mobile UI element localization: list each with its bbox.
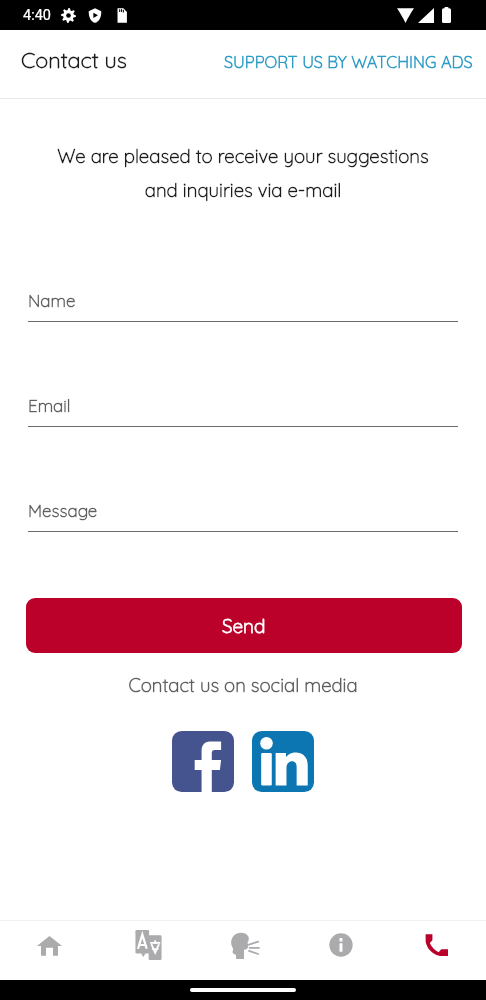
staticText: Contact us xyxy=(21,46,127,73)
button[interactable]: Contact us xyxy=(21,46,127,73)
button[interactable]: Home xyxy=(0,921,98,969)
button[interactable]: Send xyxy=(26,598,462,653)
button[interactable]: LinkedIn xyxy=(252,731,314,792)
staticText: Message xyxy=(28,500,98,521)
staticText: We are pleased to receive your suggestio… xyxy=(0,144,486,202)
button[interactable]: Facebook xyxy=(172,731,234,792)
staticText: Send xyxy=(222,614,266,638)
button[interactable]: Pronunciation xyxy=(195,921,292,969)
button[interactable]: Contact us xyxy=(389,921,486,969)
button[interactable]: About xyxy=(292,921,389,969)
staticText: Name xyxy=(28,290,76,311)
staticText: SUPPORT US BY WATCHING ADS xyxy=(224,51,473,72)
staticText: Contact us on social media xyxy=(0,673,486,696)
button[interactable]: Translate xyxy=(98,921,195,969)
staticText: 4:40 xyxy=(23,7,51,24)
staticText: Email xyxy=(28,395,71,416)
button[interactable]: SUPPORT US BY WATCHING ADS xyxy=(224,51,473,72)
